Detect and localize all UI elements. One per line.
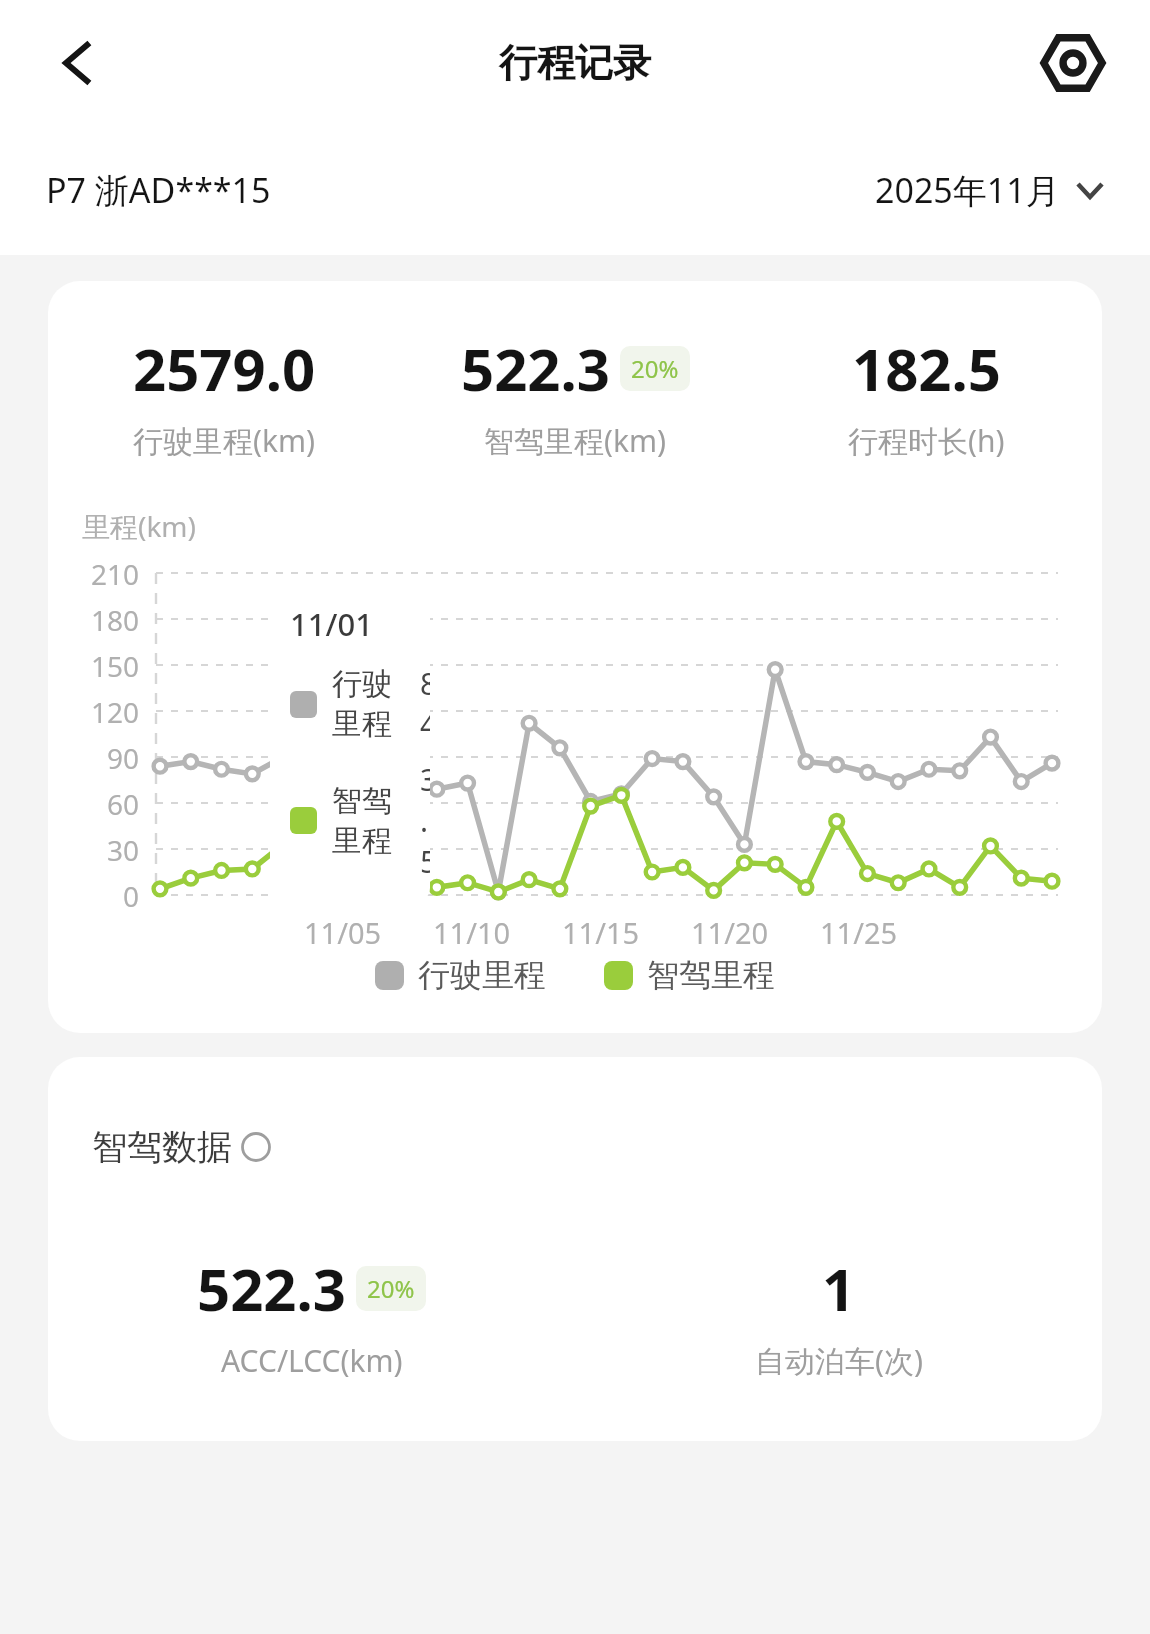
staticText: 522.3 [461,329,611,408]
staticText: 里程(km) [82,507,196,545]
staticText: 210 [91,555,140,593]
button[interactable]: 2579.0 [48,329,400,461]
staticText: 182.5 [852,329,1002,408]
staticText: 自动泊车(次) [755,1340,923,1381]
staticText: 120 [91,693,140,731]
staticText: 522.3 [197,1249,347,1328]
staticText: 智驾里程(km) [484,420,667,461]
staticText: 11/01 [290,603,373,645]
button[interactable]: 522.3 [400,329,751,461]
staticText: 60 [107,785,140,823]
staticText: 180 [91,601,140,639]
staticText: 11/25 [820,913,898,952]
staticText: 20% [367,1272,415,1305]
staticText: 1 [822,1249,856,1328]
button[interactable]: 行驶里程 [375,955,546,995]
staticText: 行驶里程 [332,665,420,743]
other: Help [241,1132,271,1162]
staticText: 11/05 [304,913,382,952]
button[interactable]: 522.3 [48,1249,575,1381]
staticText: 2025年11月 [875,167,1060,213]
staticText: 智驾里程 [332,782,420,860]
staticText: 11/15 [562,913,640,952]
staticText: P7 浙AD***15 [46,167,271,213]
button[interactable]: 1 [575,1249,1102,1381]
staticText: 智驾里程 [647,955,775,995]
button[interactable]: Settings [1038,28,1108,98]
staticText: 2579.0 [133,329,316,408]
staticText: 20% [631,352,679,385]
button[interactable]: 智驾里程 [604,955,775,995]
staticText: 30 [107,831,140,869]
staticText: 智驾数据 [92,1125,232,1169]
button[interactable]: 智驾数据 [92,1125,271,1169]
staticText: 150 [91,647,140,685]
staticText: 行驶里程 [418,955,546,995]
staticText: 90 [107,739,140,777]
button[interactable]: 2025年11月 [875,167,1104,213]
staticText: 0 [123,877,140,915]
button[interactable]: Back [48,33,108,93]
button[interactable]: 182.5 [751,329,1102,461]
staticText: 行驶里程(km) [133,420,316,461]
staticText: ACC/LCC(km) [221,1340,403,1381]
staticText: 行程时长(h) [848,420,1005,461]
staticText: 行程记录 [499,39,651,87]
staticText: 11/10 [433,913,511,952]
staticText: 11/20 [691,913,769,952]
